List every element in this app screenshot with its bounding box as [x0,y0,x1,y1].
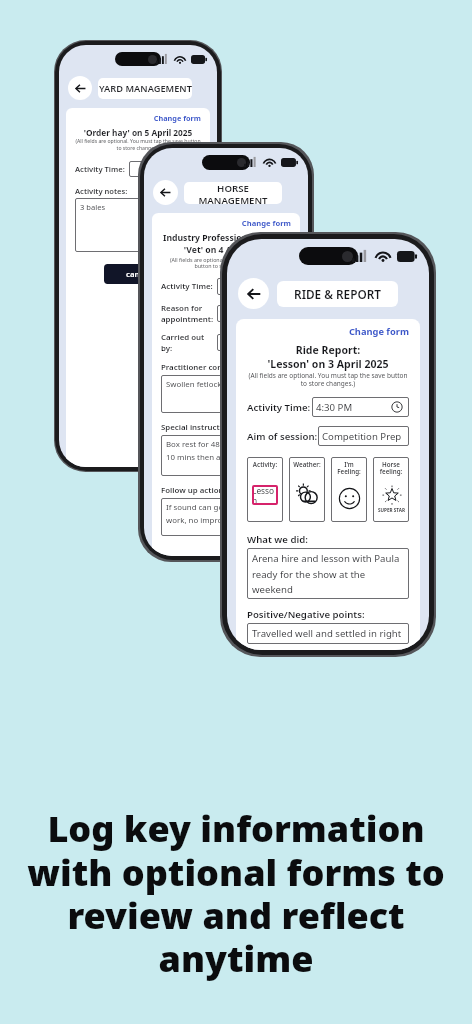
button[interactable]: I'm Feeling: [331,457,367,522]
staticText: (All fields are optional. You must tap t… [161,256,291,270]
button[interactable]: If sound can go back to light work, no i… [161,498,291,536]
staticText: (All fields are optional. You must tap t… [247,371,409,388]
button[interactable]: Swollen fetlock with mild heat [161,375,291,413]
staticText: cancel [126,269,151,280]
staticText: Practitioner comments: [161,362,252,373]
button[interactable] [217,334,291,351]
staticText: Activity Time: [247,401,312,414]
staticText: Carried out by: [161,332,217,353]
staticText: (All fields are optional. You must tap t… [75,138,201,152]
button[interactable]: Arena hire and lesson with Paula ready f… [247,548,409,599]
button[interactable]: Horse feeling: [373,457,409,522]
staticText: Positive/Negative points: [247,608,365,621]
button[interactable] [217,278,291,295]
staticText: Activity Time: [161,281,217,292]
button[interactable]: Weather: [289,457,325,522]
button[interactable]: Back [153,180,178,205]
staticText: Swollen fetlock with mild heat [166,379,277,390]
staticText: Activity notes: [75,186,128,196]
button[interactable]: Activity: [247,457,283,522]
staticText: Weather: [292,460,322,468]
button[interactable]: Travelled well and settled in right away [247,623,409,644]
staticText: Activity Time: [75,164,129,174]
staticText: 'Order hay' on 5 April 2025 [75,127,201,138]
button[interactable]: Back [68,76,92,100]
staticText: Lesson [252,485,278,505]
button[interactable]: Lesson [252,485,278,505]
button[interactable] [217,305,291,322]
staticText: Industry Professional Report: [161,232,291,244]
staticText: Travelled well and settled in right away [252,627,404,640]
staticText: Horse feeling: [376,460,406,476]
staticText: Follow up action: [161,485,226,496]
staticText: 3 bales [80,202,106,212]
staticText: Competition Prep [322,430,402,443]
staticText: Aim of session: [247,430,318,443]
button[interactable]: Competition Prep [318,426,409,446]
staticText: RIDE & REPORT [294,286,381,302]
staticText: If sound can go back to light work, no i… [166,502,286,525]
staticText: Box rest for 48 hours, hand walk 10 mins… [166,439,286,462]
staticText: HORSE MANAGEMENT [184,182,282,204]
button[interactable]: RIDE & REPORT [277,281,398,307]
staticText: I'm Feeling: [334,460,364,476]
button[interactable]: Change form [75,113,201,123]
staticText: 4:30 PM [316,401,353,414]
button[interactable]: 3 bales [75,198,201,252]
button[interactable]: Change form [247,325,409,338]
staticText: 'Lesson' on 3 April 2025 [247,357,409,371]
staticText: Log key information with optional forms … [14,804,458,982]
staticText: YARD MANAGEMENT [99,82,192,95]
button[interactable]: HORSE MANAGEMENT [184,182,282,204]
staticText: Special instructions: [161,422,238,433]
button[interactable] [129,161,201,177]
button[interactable]: YARD MANAGEMENT [98,78,192,99]
staticText: What we did: [247,533,308,546]
button[interactable]: Back [238,278,269,309]
button[interactable]: Box rest for 48 hours, hand walk 10 mins… [161,435,291,476]
staticText: SUPER STAR [378,507,405,513]
button[interactable]: cancel [104,264,173,284]
staticText: Arena hire and lesson with Paula ready f… [252,552,404,595]
staticText: 'Vet' on 4 April 2025 [161,244,291,256]
button[interactable]: 4:30 PM [312,397,409,417]
button[interactable]: Change form [161,218,291,228]
staticText: Activity: [250,460,280,468]
staticText: Reason for appointment: [161,303,217,324]
staticText: Ride Report: [247,343,409,357]
